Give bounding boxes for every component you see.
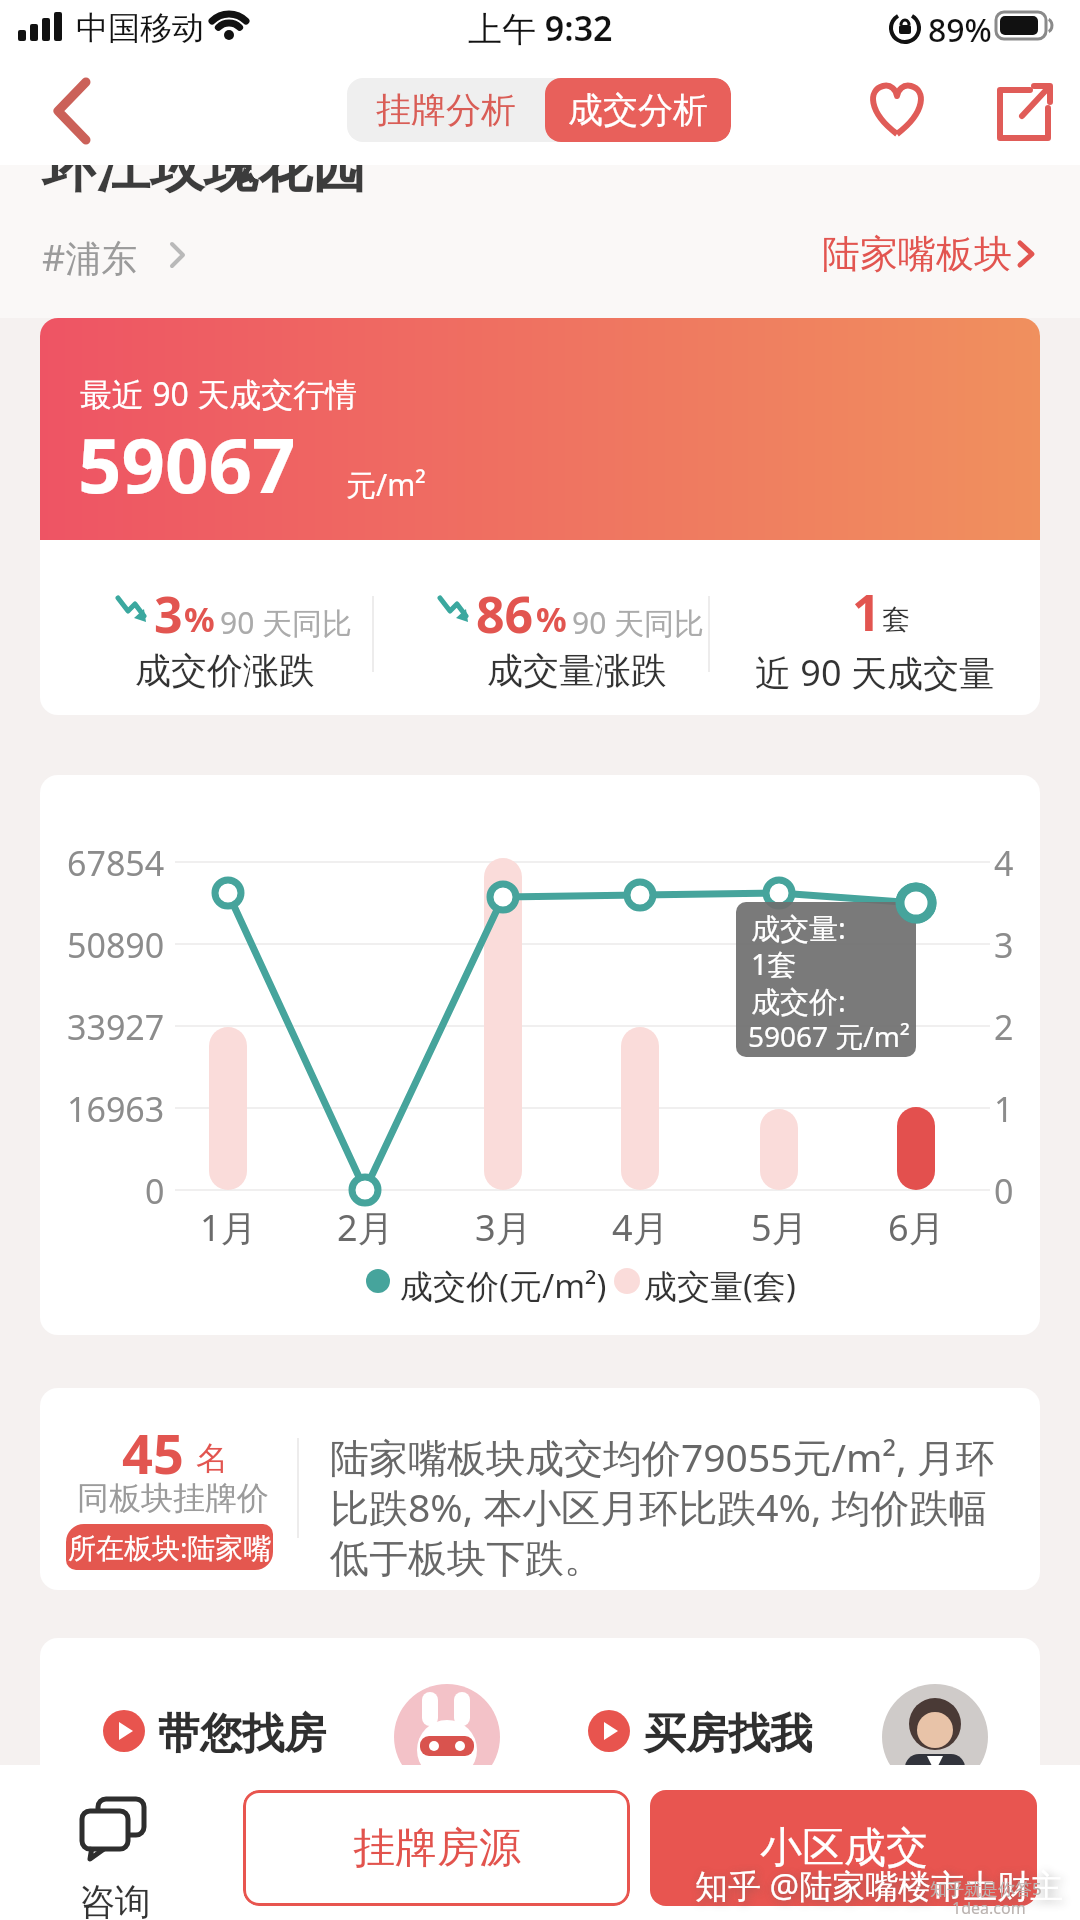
staticText: 5月 bbox=[751, 1203, 808, 1247]
staticText: 4 bbox=[994, 840, 1014, 884]
staticText: 45 bbox=[122, 1416, 184, 1490]
staticText: 知乎就是你答5 bbox=[930, 1877, 1042, 1900]
staticText: 3 bbox=[154, 580, 183, 648]
staticText: 挂牌分析 bbox=[376, 88, 516, 132]
staticText: 1dea.com bbox=[952, 1897, 1026, 1919]
staticText: 成交量: bbox=[751, 908, 846, 948]
staticText: 4月 bbox=[612, 1203, 669, 1247]
staticText: 89% bbox=[928, 8, 992, 52]
staticText: 86 bbox=[476, 580, 534, 648]
button[interactable]: 小区成交 bbox=[650, 1790, 1037, 1906]
staticText: 同板块挂牌价 bbox=[77, 1478, 269, 1518]
button[interactable] bbox=[992, 82, 1054, 142]
staticText: 上午 9:32 bbox=[468, 5, 613, 51]
staticText: 59067 元/m² bbox=[748, 1017, 910, 1055]
staticText: 67854 bbox=[67, 840, 165, 884]
button[interactable] bbox=[52, 78, 96, 146]
staticText: % bbox=[536, 596, 567, 642]
staticText: 0 bbox=[145, 1168, 165, 1212]
staticText: #浦东 bbox=[42, 233, 138, 282]
staticText: 最近 90 天成交行情 bbox=[80, 372, 358, 416]
staticText: 成交分析 bbox=[568, 88, 708, 132]
staticText: 成交量(套) bbox=[644, 1263, 796, 1308]
staticText: % bbox=[184, 596, 215, 642]
button[interactable]: 挂牌房源 bbox=[243, 1790, 630, 1906]
button[interactable]: 陆家嘴板块 bbox=[600, 230, 1040, 278]
staticText: 3 bbox=[994, 922, 1014, 966]
button[interactable]: 挂牌分析 bbox=[347, 78, 545, 142]
staticText: 成交价(元/m²) bbox=[400, 1263, 607, 1308]
staticText: 小区成交 bbox=[760, 1822, 928, 1875]
staticText: 59067 bbox=[78, 412, 296, 516]
staticText: 90 天同比 bbox=[572, 602, 705, 643]
staticText: 知乎 @陆家嘴楼市土财主 bbox=[695, 1863, 1064, 1908]
staticText: 成交价涨跌 bbox=[135, 648, 315, 692]
staticText: 咨询 bbox=[79, 1879, 151, 1919]
button[interactable] bbox=[866, 80, 928, 140]
staticText: 所在板块:陆家嘴 bbox=[68, 1528, 272, 1566]
staticText: 50890 bbox=[67, 922, 165, 966]
button[interactable]: 咨询 bbox=[60, 1785, 170, 1915]
staticText: 1月 bbox=[200, 1203, 257, 1247]
staticText: 陆家嘴板块成交均价79055元/m², 月环 比跌8%, 本小区月环比跌4%, … bbox=[330, 1430, 995, 1583]
staticText: 6月 bbox=[888, 1203, 945, 1247]
staticText: 买房找我 bbox=[644, 1708, 812, 1761]
staticText: 元/m² bbox=[346, 464, 426, 505]
staticText: 1 bbox=[994, 1086, 1014, 1130]
staticText: 中国移动 bbox=[76, 8, 204, 48]
staticText: 3月 bbox=[475, 1203, 532, 1247]
staticText: 成交量涨跌 bbox=[487, 648, 667, 692]
staticText: 2月 bbox=[337, 1203, 394, 1247]
staticText: 33927 bbox=[67, 1004, 165, 1048]
staticText: 1套 bbox=[751, 944, 797, 984]
staticText: 16963 bbox=[67, 1086, 165, 1130]
staticText: 2 bbox=[994, 1004, 1014, 1048]
staticText: 名 bbox=[196, 1438, 228, 1478]
button[interactable]: 成交分析 bbox=[545, 78, 731, 142]
staticText: 陆家嘴板块 bbox=[822, 230, 1012, 278]
staticText: 成交价: bbox=[751, 981, 846, 1021]
staticText: 环江玫瑰花园 bbox=[42, 134, 366, 202]
staticText: 0 bbox=[994, 1168, 1014, 1212]
staticText: 90 天同比 bbox=[220, 602, 353, 643]
staticText: 1 bbox=[852, 578, 881, 646]
staticText: 近 90 天成交量 bbox=[755, 648, 995, 692]
staticText: 套 bbox=[882, 602, 910, 637]
staticText: 挂牌房源 bbox=[353, 1822, 521, 1875]
staticText: 带您找房 bbox=[158, 1708, 326, 1761]
